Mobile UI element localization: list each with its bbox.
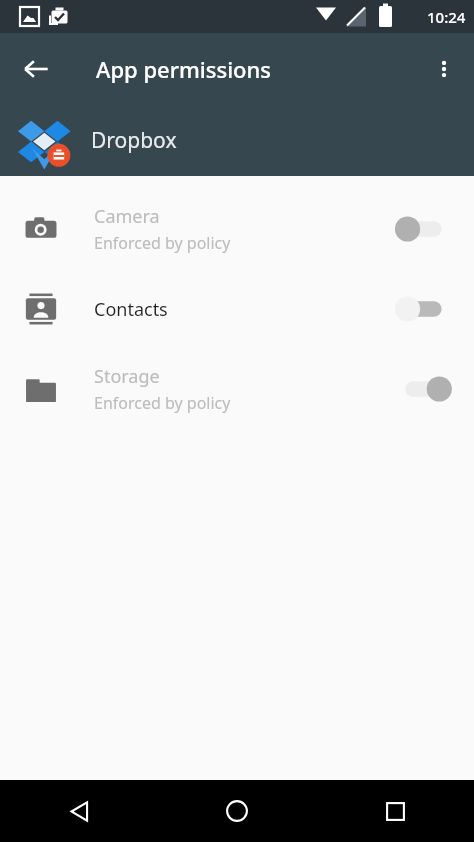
staticText: Dropbox	[91, 126, 177, 155]
button[interactable]: Dropbox	[0, 105, 474, 176]
staticText: Storage	[94, 364, 160, 389]
button[interactable]: Recent apps	[316, 780, 474, 842]
button[interactable]: Back	[12, 45, 60, 93]
button[interactable]: Contacts permission toggle	[400, 289, 452, 329]
staticText: Enforced by policy	[94, 232, 231, 254]
button[interactable]: More options	[420, 45, 468, 93]
button[interactable]: Home	[158, 780, 316, 842]
staticText: App permissions	[96, 54, 272, 84]
button[interactable]: Camera permission toggle	[400, 209, 452, 249]
staticText: 10:24	[427, 7, 466, 27]
button[interactable]: Camera	[0, 186, 474, 272]
button[interactable]: Back	[0, 780, 158, 842]
staticText: Contacts	[94, 297, 168, 322]
button[interactable]: Storage	[0, 346, 474, 432]
staticText: Camera	[94, 204, 160, 229]
button[interactable]: Contacts	[0, 272, 474, 346]
staticText: Enforced by policy	[94, 392, 231, 414]
button[interactable]: Storage permission toggle	[400, 369, 452, 409]
